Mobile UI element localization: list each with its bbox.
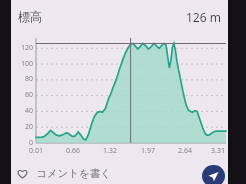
staticText: 0	[28, 138, 33, 148]
staticText: 20	[24, 122, 33, 132]
staticText: 40	[24, 106, 33, 116]
staticText: 100	[20, 59, 33, 69]
button[interactable]: 120	[11, 33, 228, 162]
staticText: 1.32	[103, 146, 117, 156]
staticText: 2.64	[178, 146, 192, 156]
staticText: 標高	[18, 9, 42, 24]
staticText: 60	[24, 90, 33, 100]
staticText: 3.31	[211, 146, 225, 156]
staticText: 126 m	[186, 9, 221, 25]
button[interactable]: コメントを書く	[16, 162, 111, 184]
staticText: 1.97	[141, 146, 155, 156]
staticText: 80	[24, 74, 33, 84]
staticText: 0.01	[29, 146, 43, 156]
staticText: 0.66	[66, 146, 80, 156]
button[interactable]: Send comment	[202, 165, 225, 184]
staticText: コメントを書く	[36, 167, 111, 180]
staticText: 120	[20, 43, 33, 53]
